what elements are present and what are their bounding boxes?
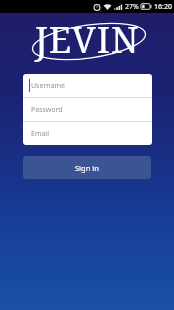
staticText: Password [31, 105, 63, 115]
staticText: Email [31, 129, 49, 139]
button[interactable]: Sign in [23, 156, 151, 179]
staticText: 27% [125, 2, 139, 12]
button[interactable]: Email [23, 122, 152, 145]
staticText: Username [31, 81, 66, 91]
staticText: JEVIN [35, 15, 140, 64]
staticText: Sign in [75, 163, 99, 173]
button[interactable]: Username [23, 74, 152, 97]
button[interactable]: Password [23, 98, 152, 121]
staticText: 16:20 [154, 2, 172, 12]
